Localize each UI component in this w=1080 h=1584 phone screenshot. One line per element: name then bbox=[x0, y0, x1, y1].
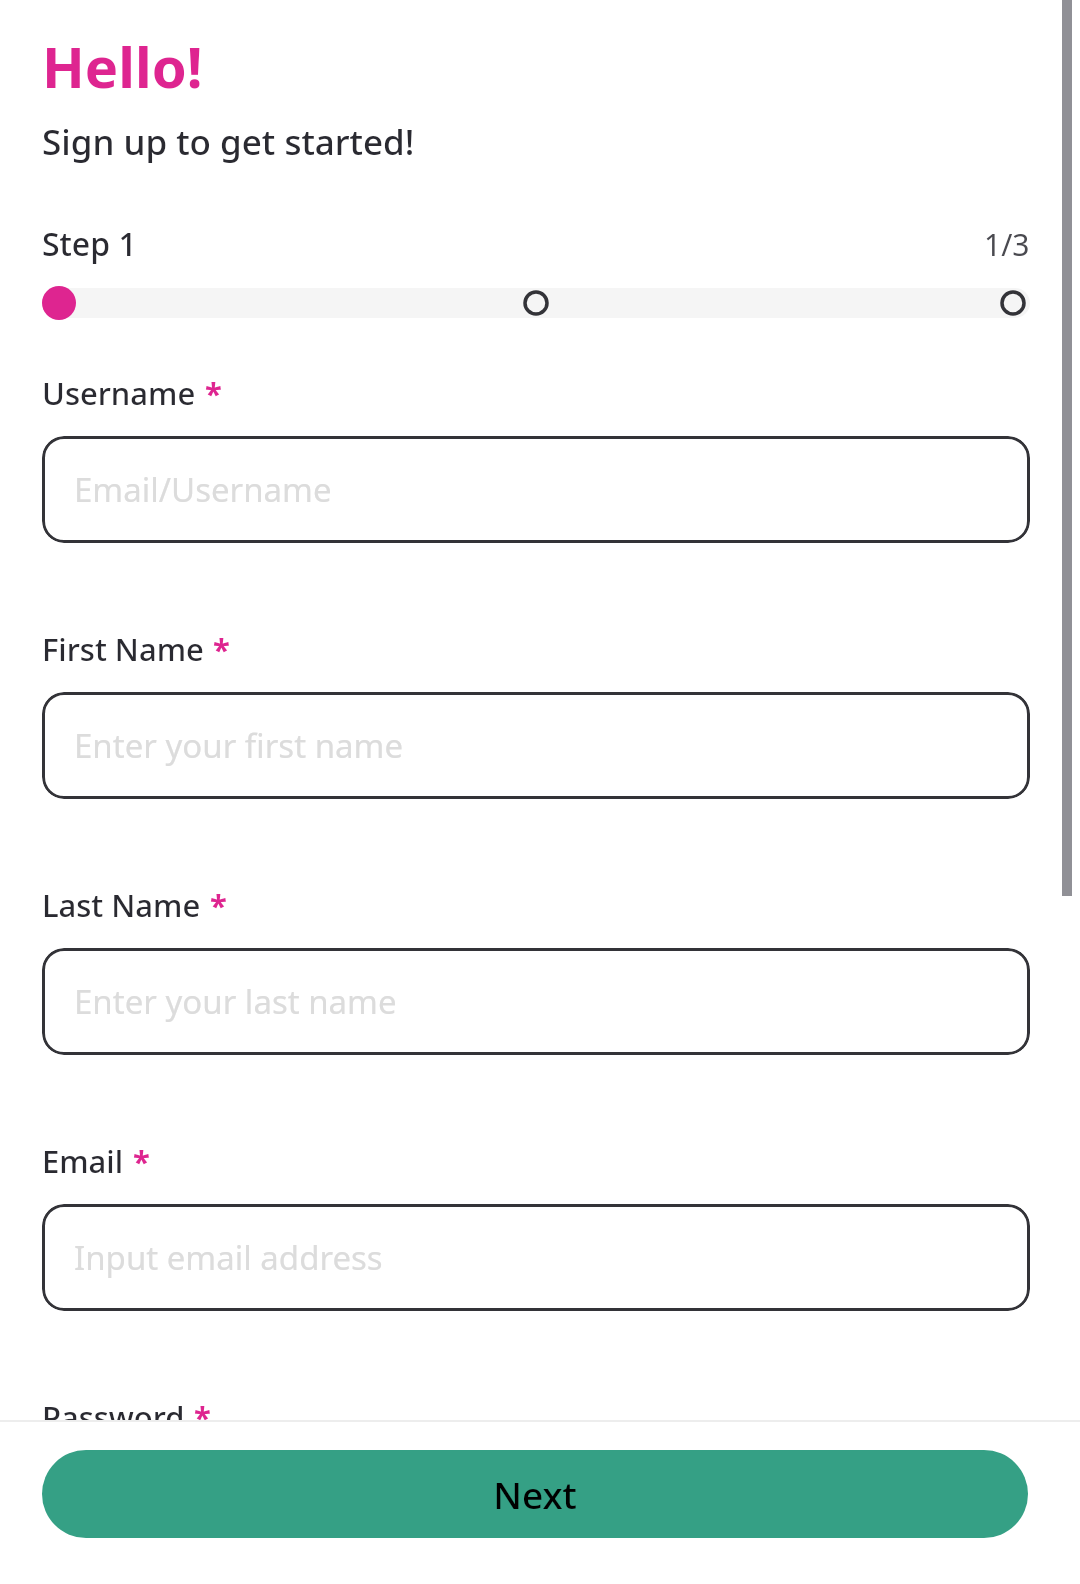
staticText: Input email address bbox=[74, 1235, 383, 1280]
button[interactable]: Email/Username bbox=[42, 436, 1030, 543]
staticText: 1/3 bbox=[984, 224, 1030, 265]
staticText: * bbox=[213, 628, 230, 670]
staticText: Step 1 bbox=[42, 222, 137, 266]
staticText: Next bbox=[493, 1469, 577, 1519]
button[interactable]: Next bbox=[42, 1450, 1028, 1538]
staticText: Email bbox=[42, 1140, 124, 1182]
staticText: Password bbox=[42, 1396, 185, 1438]
staticText: Enter your first name bbox=[74, 723, 404, 768]
staticText: Hello! bbox=[42, 28, 203, 104]
button[interactable]: Enter your password bbox=[42, 1460, 1030, 1567]
button[interactable]: Input email address bbox=[42, 1204, 1030, 1311]
staticText: Enter your last name bbox=[74, 979, 397, 1024]
staticText: * bbox=[194, 1396, 211, 1438]
staticText: Last Name bbox=[42, 884, 201, 926]
button[interactable]: Enter your last name bbox=[42, 948, 1030, 1055]
staticText: Username bbox=[42, 372, 196, 414]
button[interactable]: Enter your first name bbox=[42, 692, 1030, 799]
staticText: Sign up to get started! bbox=[42, 118, 415, 166]
staticText: First Name bbox=[42, 628, 204, 670]
staticText: * bbox=[205, 372, 222, 414]
staticText: * bbox=[210, 884, 227, 926]
staticText: Email/Username bbox=[74, 467, 332, 512]
staticText: * bbox=[133, 1140, 150, 1182]
